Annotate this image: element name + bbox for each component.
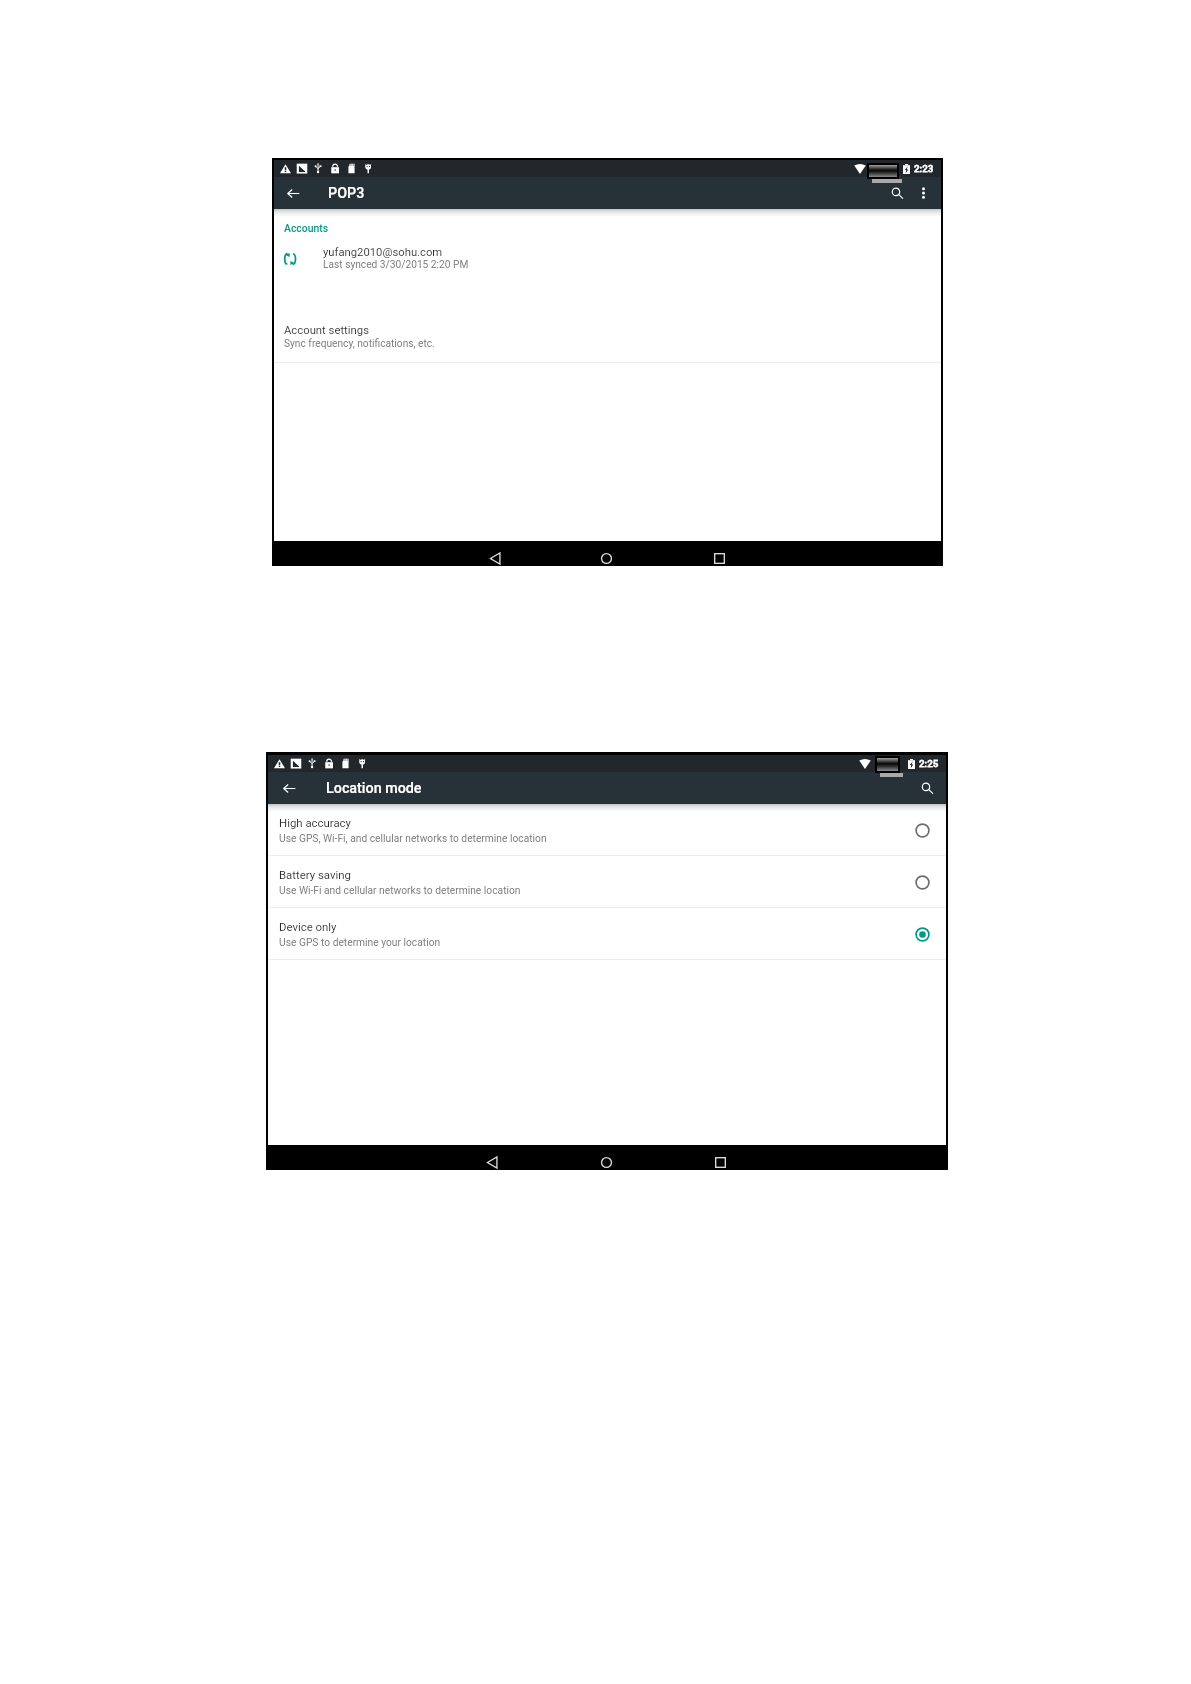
staticText: 2:23 bbox=[914, 163, 934, 174]
staticText: Last synced 3/30/2015 2:20 PM bbox=[323, 259, 469, 271]
button[interactable]: Home bbox=[594, 551, 618, 565]
button[interactable]: yufang2010@sohu.com bbox=[274, 238, 941, 278]
staticText: Location mode bbox=[326, 780, 422, 797]
button[interactable]: High accuracy bbox=[268, 804, 946, 856]
button[interactable]: Home bbox=[594, 1155, 618, 1169]
staticText: Sync frequency, notifications, etc. bbox=[284, 338, 435, 350]
button[interactable]: Back bbox=[483, 551, 507, 565]
button[interactable]: Account settings bbox=[274, 322, 941, 363]
staticText: Battery saving bbox=[279, 868, 351, 881]
button[interactable]: Navigate up bbox=[279, 177, 308, 209]
button[interactable]: Recent apps bbox=[707, 551, 731, 565]
button[interactable]: Device only bbox=[268, 908, 946, 960]
staticText: Accounts bbox=[284, 222, 329, 234]
button[interactable]: Search bbox=[883, 179, 911, 207]
button[interactable]: Search bbox=[913, 774, 941, 802]
button[interactable]: More options bbox=[912, 179, 934, 207]
staticText: yufang2010@sohu.com bbox=[323, 246, 443, 259]
button[interactable]: Battery saving bbox=[268, 856, 946, 908]
staticText: 2:25 bbox=[919, 758, 939, 769]
staticText: High accuracy bbox=[279, 816, 351, 829]
staticText: Use Wi-Fi and cellular networks to deter… bbox=[279, 884, 521, 896]
button[interactable]: Navigate up bbox=[275, 772, 304, 804]
staticText: Account settings bbox=[284, 324, 369, 337]
staticText: Device only bbox=[279, 920, 337, 933]
staticText: Use GPS to determine your location bbox=[279, 936, 441, 948]
staticText: Use GPS, Wi-Fi, and cellular networks to… bbox=[279, 832, 547, 844]
button[interactable]: Recent apps bbox=[708, 1155, 732, 1169]
staticText: POP3 bbox=[328, 185, 365, 202]
button[interactable]: Back bbox=[480, 1155, 504, 1169]
